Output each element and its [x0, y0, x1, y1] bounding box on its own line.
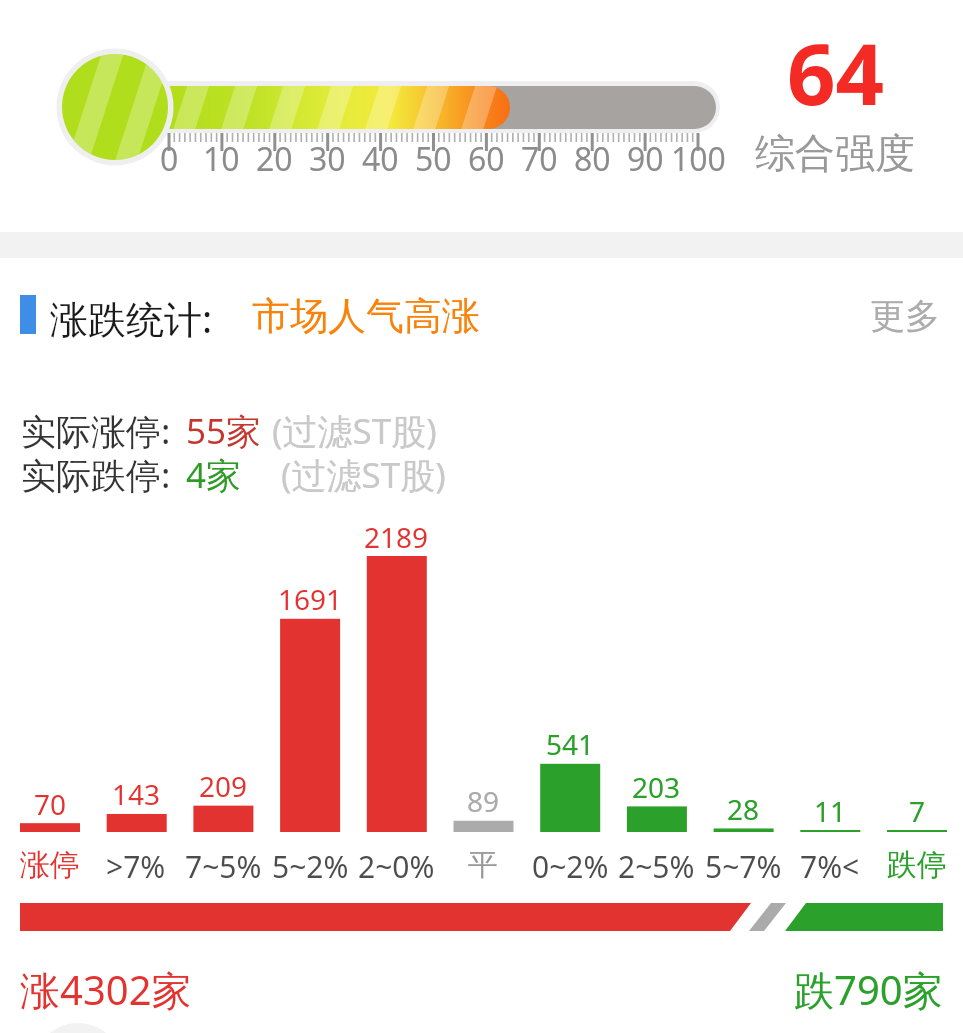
- staticText: 更多: [870, 294, 940, 338]
- staticText: 100: [671, 137, 726, 181]
- staticText: (过滤ST股): [281, 451, 446, 499]
- staticText: 2189: [364, 518, 429, 556]
- staticText: >7%: [106, 846, 166, 887]
- staticText: 涨跌统计:: [50, 292, 213, 344]
- staticText: 7~5%: [185, 846, 262, 887]
- button[interactable]: 更多: [640, 294, 940, 338]
- staticText: 203: [632, 768, 681, 806]
- staticText: (过滤ST股): [272, 407, 437, 455]
- staticText: 143: [112, 775, 161, 813]
- staticText: 11: [814, 792, 847, 830]
- staticText: 7: [909, 792, 926, 830]
- staticText: 90: [627, 137, 664, 181]
- staticText: 5~2%: [272, 846, 349, 887]
- staticText: 89: [467, 782, 500, 820]
- staticText: 2~0%: [358, 846, 435, 887]
- staticText: 70: [34, 785, 67, 823]
- staticText: 5~7%: [705, 846, 782, 887]
- staticText: 30: [309, 137, 346, 181]
- staticText: 60: [468, 137, 505, 181]
- staticText: 70: [521, 137, 558, 181]
- staticText: 4家: [186, 451, 242, 499]
- staticText: 实际涨停:: [21, 407, 171, 455]
- staticText: 涨4302家: [20, 962, 192, 1017]
- staticText: 20: [256, 137, 293, 181]
- staticText: 50: [415, 137, 452, 181]
- staticText: 541: [546, 725, 595, 763]
- staticText: 平: [468, 846, 498, 884]
- staticText: 209: [199, 767, 248, 805]
- staticText: 40: [362, 137, 399, 181]
- staticText: 10: [203, 137, 240, 181]
- staticText: 综合强度: [755, 128, 915, 178]
- staticText: 涨停: [20, 846, 80, 884]
- staticText: 0: [160, 137, 179, 181]
- staticText: 实际跌停:: [21, 451, 171, 499]
- staticText: 55家: [186, 407, 262, 455]
- staticText: 7%<: [800, 846, 860, 887]
- staticText: 80: [574, 137, 611, 181]
- staticText: 市场人气高涨: [252, 292, 480, 340]
- staticText: 0~2%: [532, 846, 609, 887]
- staticText: 64: [787, 14, 885, 130]
- staticText: 2~5%: [618, 846, 695, 887]
- staticText: 28: [727, 790, 760, 828]
- staticText: 跌停: [887, 846, 947, 884]
- staticText: 1691: [278, 580, 343, 618]
- staticText: 跌790家: [794, 962, 943, 1017]
